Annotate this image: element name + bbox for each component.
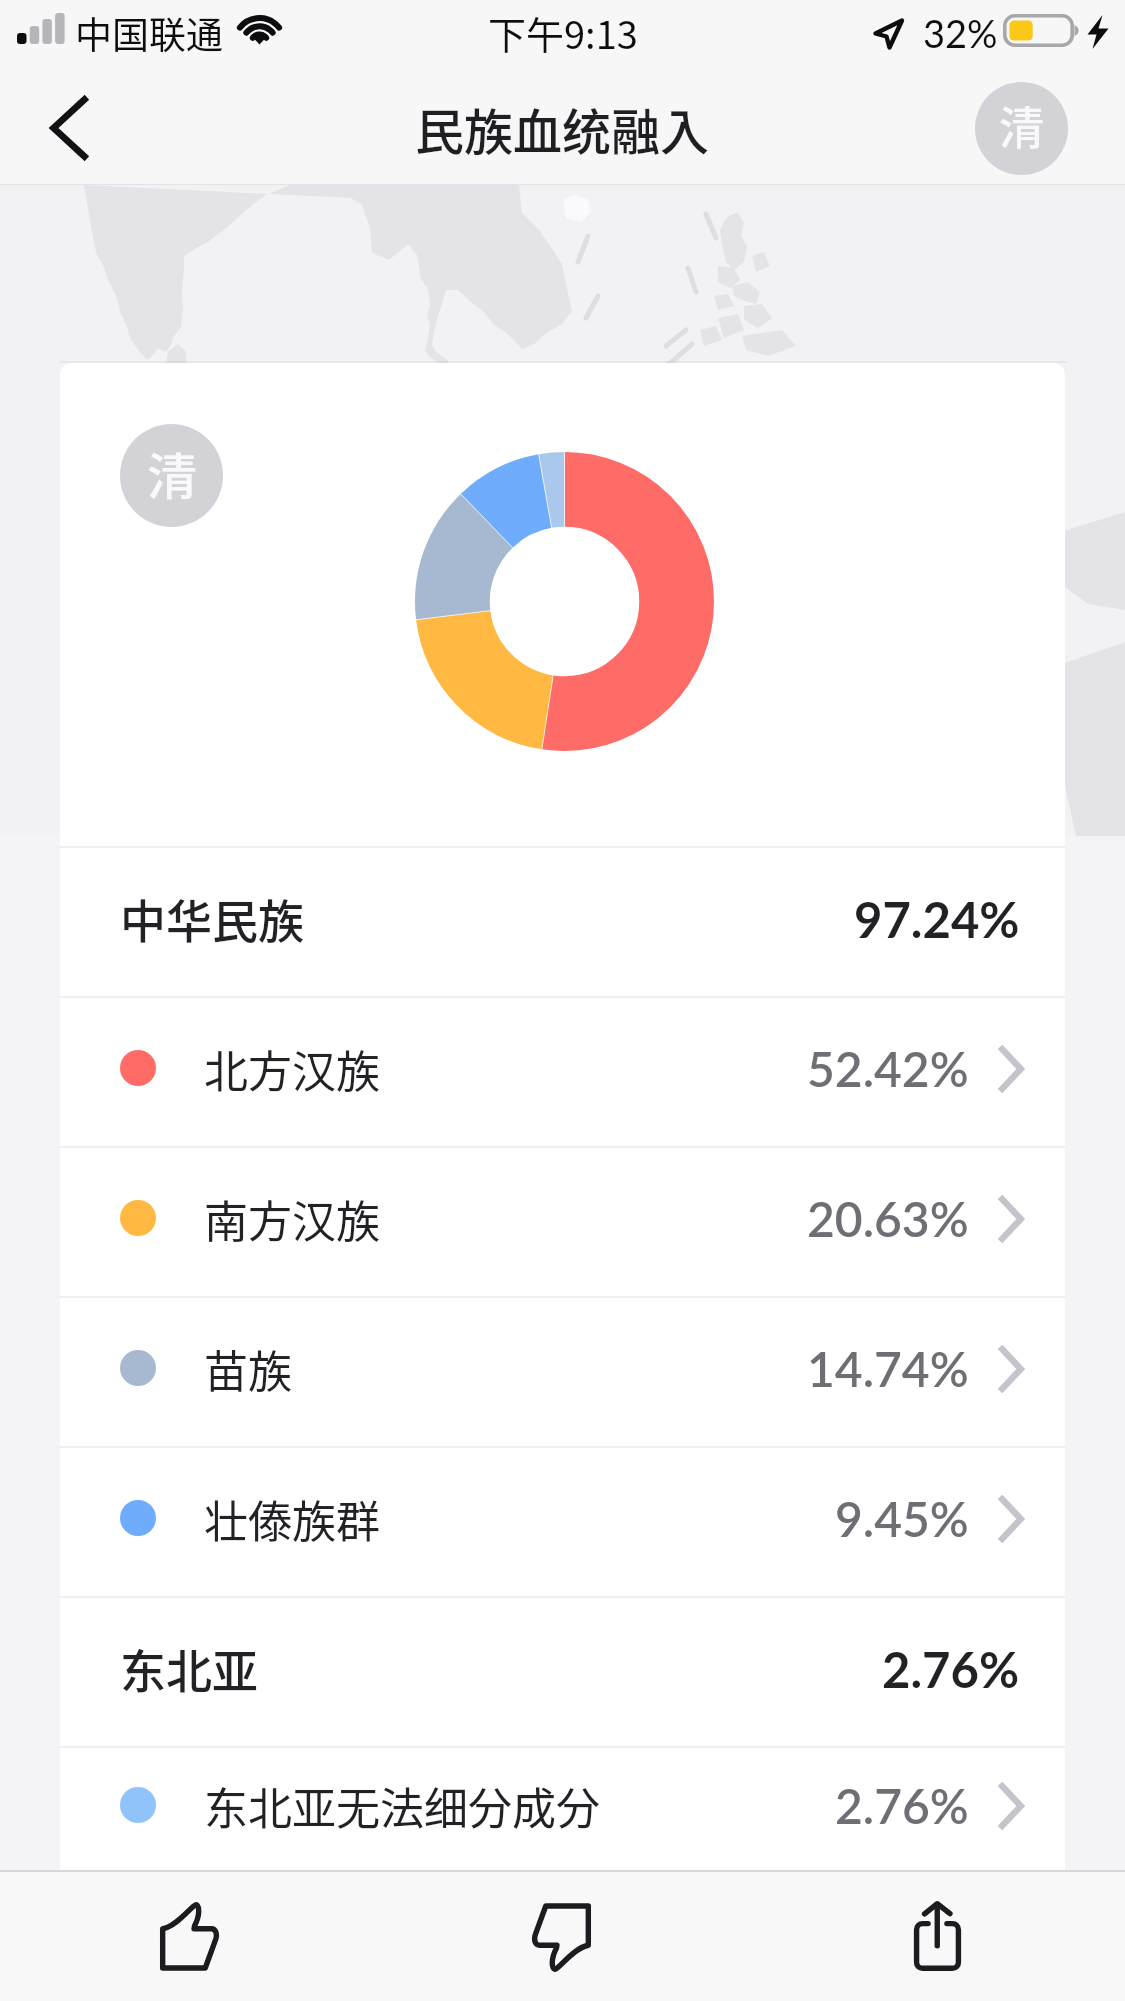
button[interactable]: 返回 (25, 84, 113, 172)
staticText: 东北亚无法细分成分 (204, 1774, 600, 1838)
button[interactable]: 东北亚 (60, 1598, 1065, 1746)
button[interactable]: 中华民族 (60, 848, 1065, 996)
staticText: 20.63% (807, 1190, 969, 1248)
staticText: 97.24% (854, 890, 1020, 949)
button[interactable]: 东北亚无法细分成分 (60, 1748, 1065, 1870)
staticText: 北方汉族 (204, 1037, 380, 1101)
button[interactable]: 清 (975, 82, 1068, 175)
staticText: 32% (923, 10, 998, 56)
staticText: 下午9:13 (488, 5, 638, 60)
staticText: 清 (147, 437, 197, 509)
button[interactable]: 南方汉族 (60, 1148, 1065, 1296)
staticText: 52.42% (807, 1040, 969, 1098)
staticText: 9.45% (835, 1490, 969, 1548)
staticText: 清 (999, 93, 1045, 158)
staticText: 2.76% (882, 1640, 1020, 1699)
button[interactable]: 北方汉族 (60, 998, 1065, 1146)
staticText: 中国联通 (75, 6, 223, 60)
button[interactable]: 壮傣族群 (60, 1448, 1065, 1596)
staticText: 东北亚 (120, 1635, 258, 1702)
staticText: 民族血统融入 (415, 93, 710, 164)
button[interactable]: 分享 (750, 1872, 1125, 2001)
staticText: 2.76% (835, 1777, 969, 1835)
button[interactable]: 踩 (375, 1872, 750, 2001)
button[interactable]: 赞 (0, 1872, 375, 2001)
button[interactable]: 苗族 (60, 1298, 1065, 1446)
button[interactable]: 清 (120, 424, 223, 527)
staticText: 中华民族 (120, 885, 304, 952)
staticText: 14.74% (807, 1340, 969, 1398)
staticText: 壮傣族群 (204, 1487, 380, 1551)
staticText: 南方汉族 (204, 1187, 380, 1251)
staticText: 苗族 (204, 1337, 292, 1401)
